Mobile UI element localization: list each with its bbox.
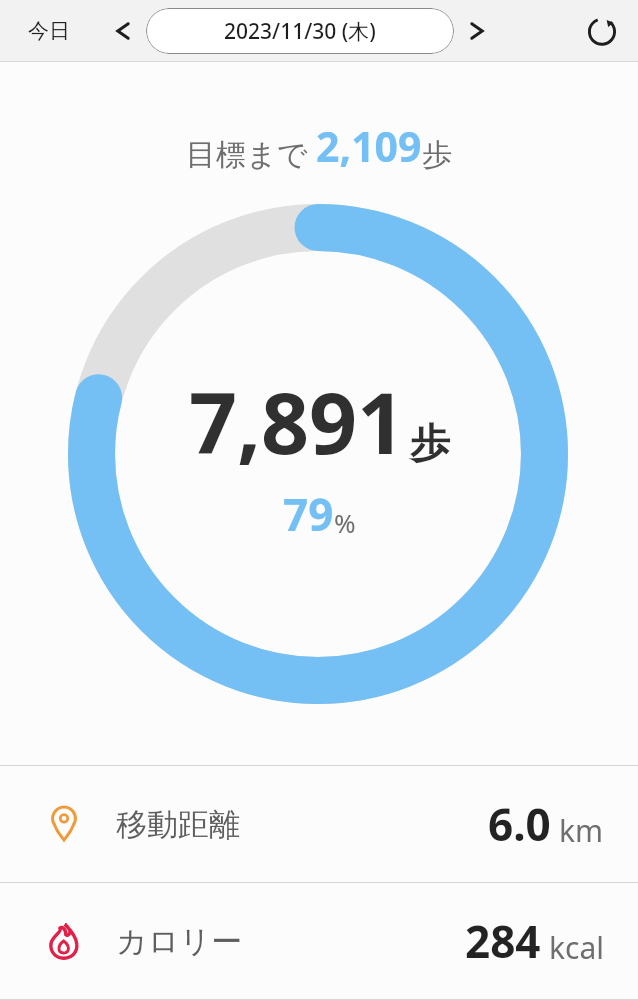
staticText: 今日	[28, 18, 70, 44]
staticText: 7,891	[189, 364, 406, 478]
staticText: 2023/11/30 (木)	[224, 17, 376, 46]
staticText: 284	[465, 911, 541, 971]
button[interactable]: カロリー	[0, 883, 638, 999]
button[interactable]: 次の日	[460, 14, 494, 48]
staticText: 目標まで	[186, 136, 308, 174]
button[interactable]: 更新	[580, 9, 624, 53]
staticText: 79	[283, 484, 334, 544]
staticText: 歩	[410, 418, 450, 468]
staticText: 移動距離	[116, 805, 240, 844]
staticText: 歩	[422, 136, 452, 174]
staticText: km	[559, 810, 604, 851]
staticText: kcal	[549, 927, 604, 968]
staticText: %	[334, 505, 356, 540]
button[interactable]: 2023/11/30 (木)	[146, 8, 454, 54]
button[interactable]: 移動距離	[0, 766, 638, 882]
staticText: 6.0	[488, 794, 551, 854]
button[interactable]: 前の日	[106, 14, 140, 48]
staticText: カロリー	[116, 922, 243, 961]
staticText: 2,109	[316, 118, 422, 174]
button[interactable]: 今日	[14, 12, 84, 50]
